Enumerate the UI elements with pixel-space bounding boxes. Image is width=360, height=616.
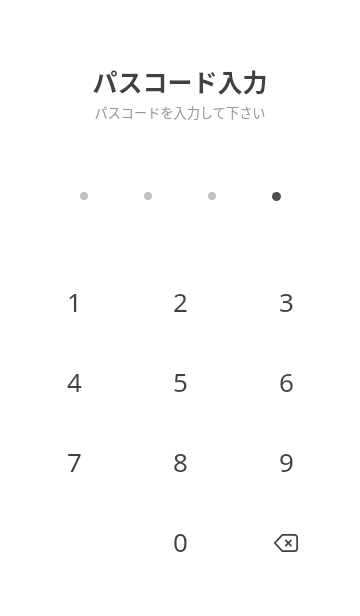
staticText: 7 (67, 444, 82, 479)
staticText: パスコードを入力して下さい (0, 103, 360, 122)
button[interactable]: 7 (21, 421, 127, 501)
button[interactable]: Backspace (233, 501, 339, 581)
staticText: 3 (279, 284, 294, 319)
staticText: 2 (173, 284, 188, 319)
staticText: 6 (279, 364, 294, 399)
button[interactable]: 8 (127, 421, 233, 501)
staticText: 8 (173, 444, 188, 479)
button[interactable]: 4 (21, 341, 127, 421)
button[interactable]: 3 (233, 261, 339, 341)
button[interactable]: 1 (21, 261, 127, 341)
staticText: 5 (173, 364, 188, 399)
staticText: 1 (67, 284, 82, 319)
button[interactable]: 9 (233, 421, 339, 501)
staticText: パスコード入力 (0, 63, 360, 99)
button[interactable]: 0 (127, 501, 233, 581)
staticText: 4 (67, 364, 82, 399)
button[interactable]: 5 (127, 341, 233, 421)
staticText: 9 (279, 444, 294, 479)
button[interactable]: 2 (127, 261, 233, 341)
staticText: 0 (173, 524, 188, 559)
button[interactable]: 6 (233, 341, 339, 421)
